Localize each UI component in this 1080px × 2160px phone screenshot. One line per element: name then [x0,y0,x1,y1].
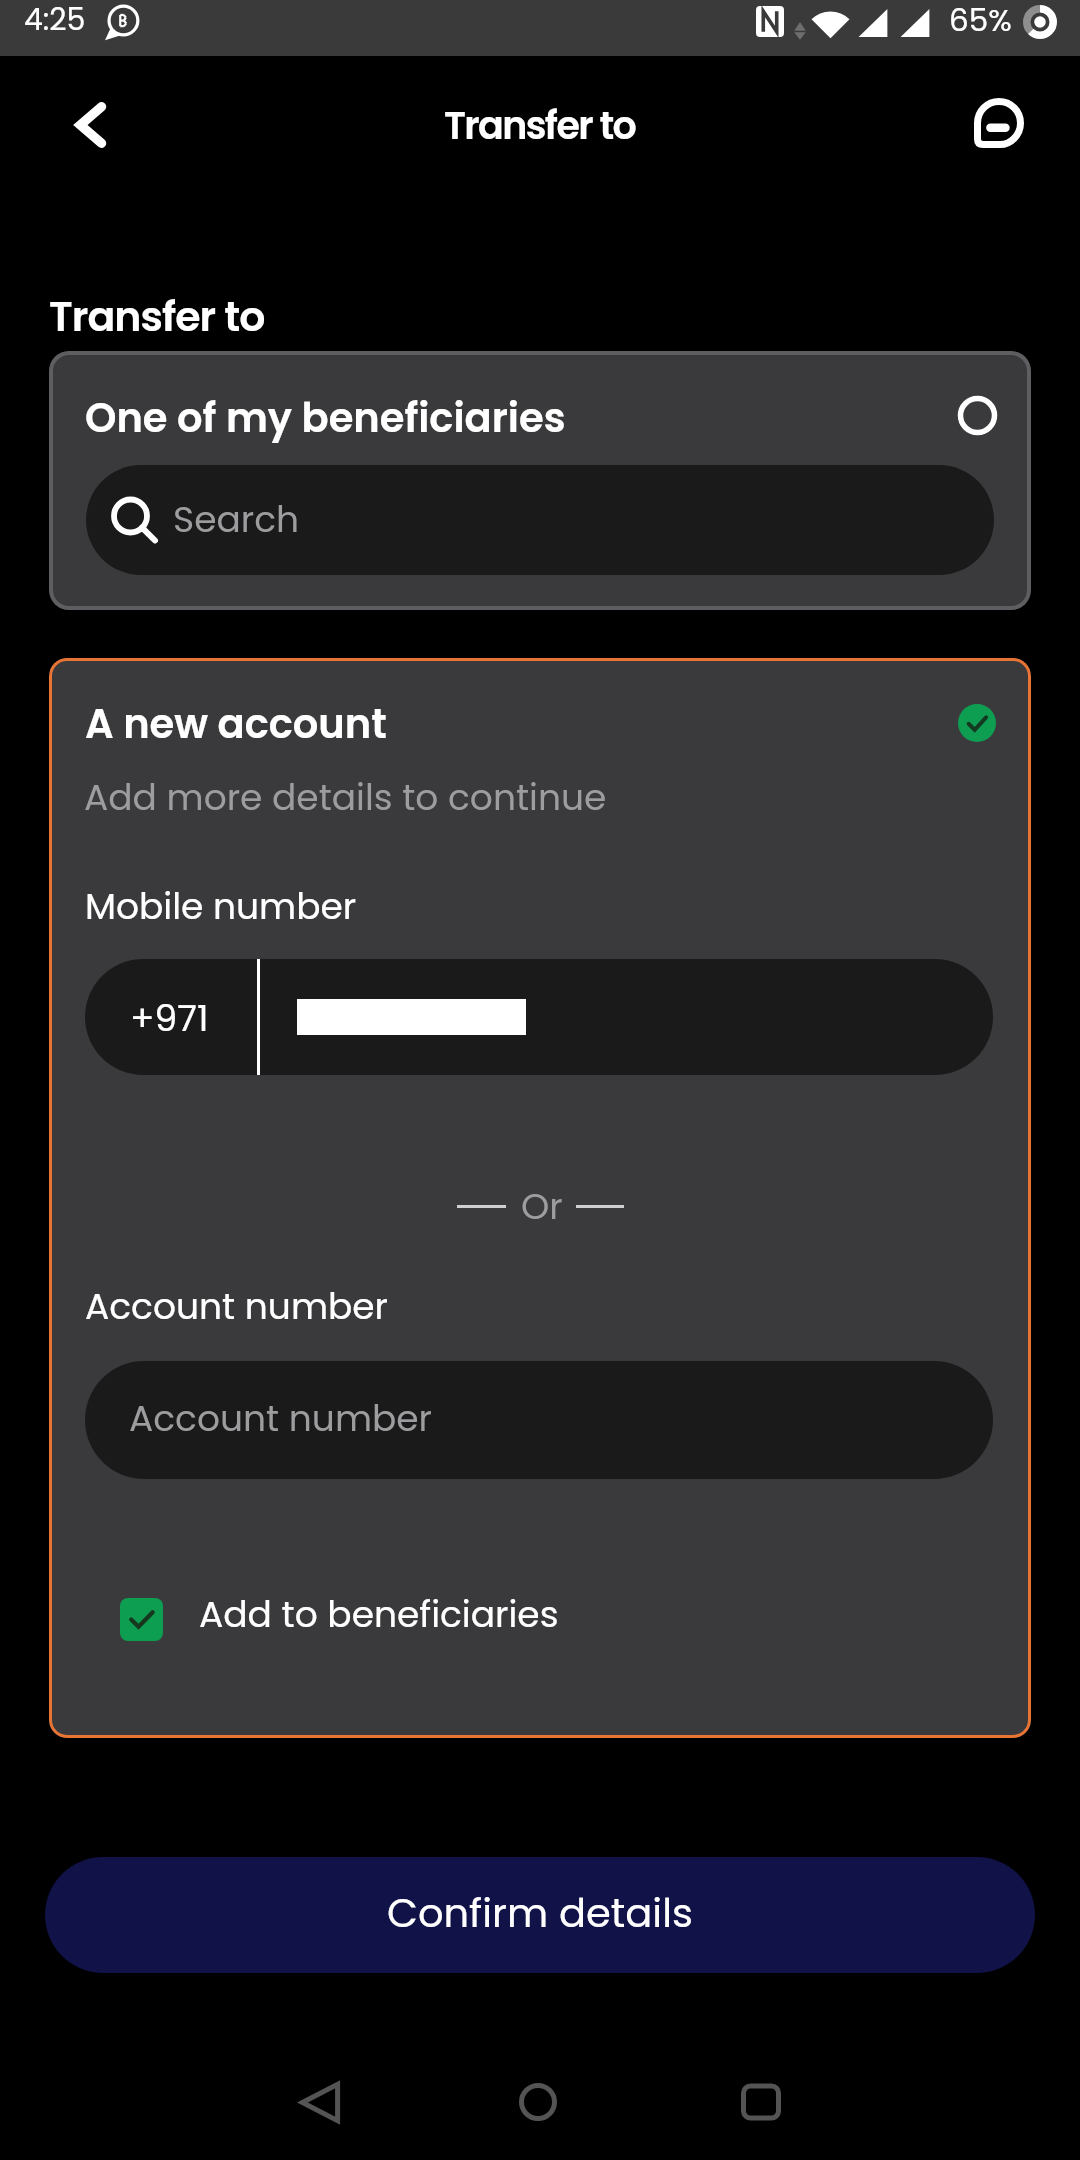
button[interactable]: Account number [85,1361,993,1479]
staticText: Transfer to [444,99,636,152]
staticText: +971 [130,993,209,1043]
button[interactable]: Add to beneficiaries [109,1587,619,1653]
staticText: Search [173,494,300,544]
staticText: One of my beneficiaries [85,390,566,446]
staticText: Confirm details [387,1885,693,1941]
button[interactable]: Select beneficiary [952,390,1002,440]
staticText: Add to beneficiaries [199,1589,559,1639]
button[interactable]: Confirm details [45,1857,1035,1973]
button[interactable]: +971 [85,959,993,1075]
staticText: 4:25 [24,0,86,41]
staticText: Transfer to [49,288,265,345]
button[interactable]: Home [493,2057,583,2147]
staticText: 65% [949,0,1012,41]
staticText: Add more details to continue [84,772,607,822]
button[interactable]: Recent apps [716,2057,806,2147]
staticText: A new account [85,696,387,752]
staticText: Or [521,1181,563,1231]
staticText: Account number [85,1281,389,1331]
button[interactable]: Back [275,2057,365,2147]
staticText: Account number [129,1393,433,1443]
button[interactable]: A new account [49,658,1031,1738]
button[interactable]: Support chat [963,87,1034,158]
button[interactable]: Search [86,465,994,575]
button[interactable]: Back [55,90,125,160]
staticText: Mobile number [85,881,357,931]
button[interactable]: One of my beneficiaries [49,351,1031,610]
